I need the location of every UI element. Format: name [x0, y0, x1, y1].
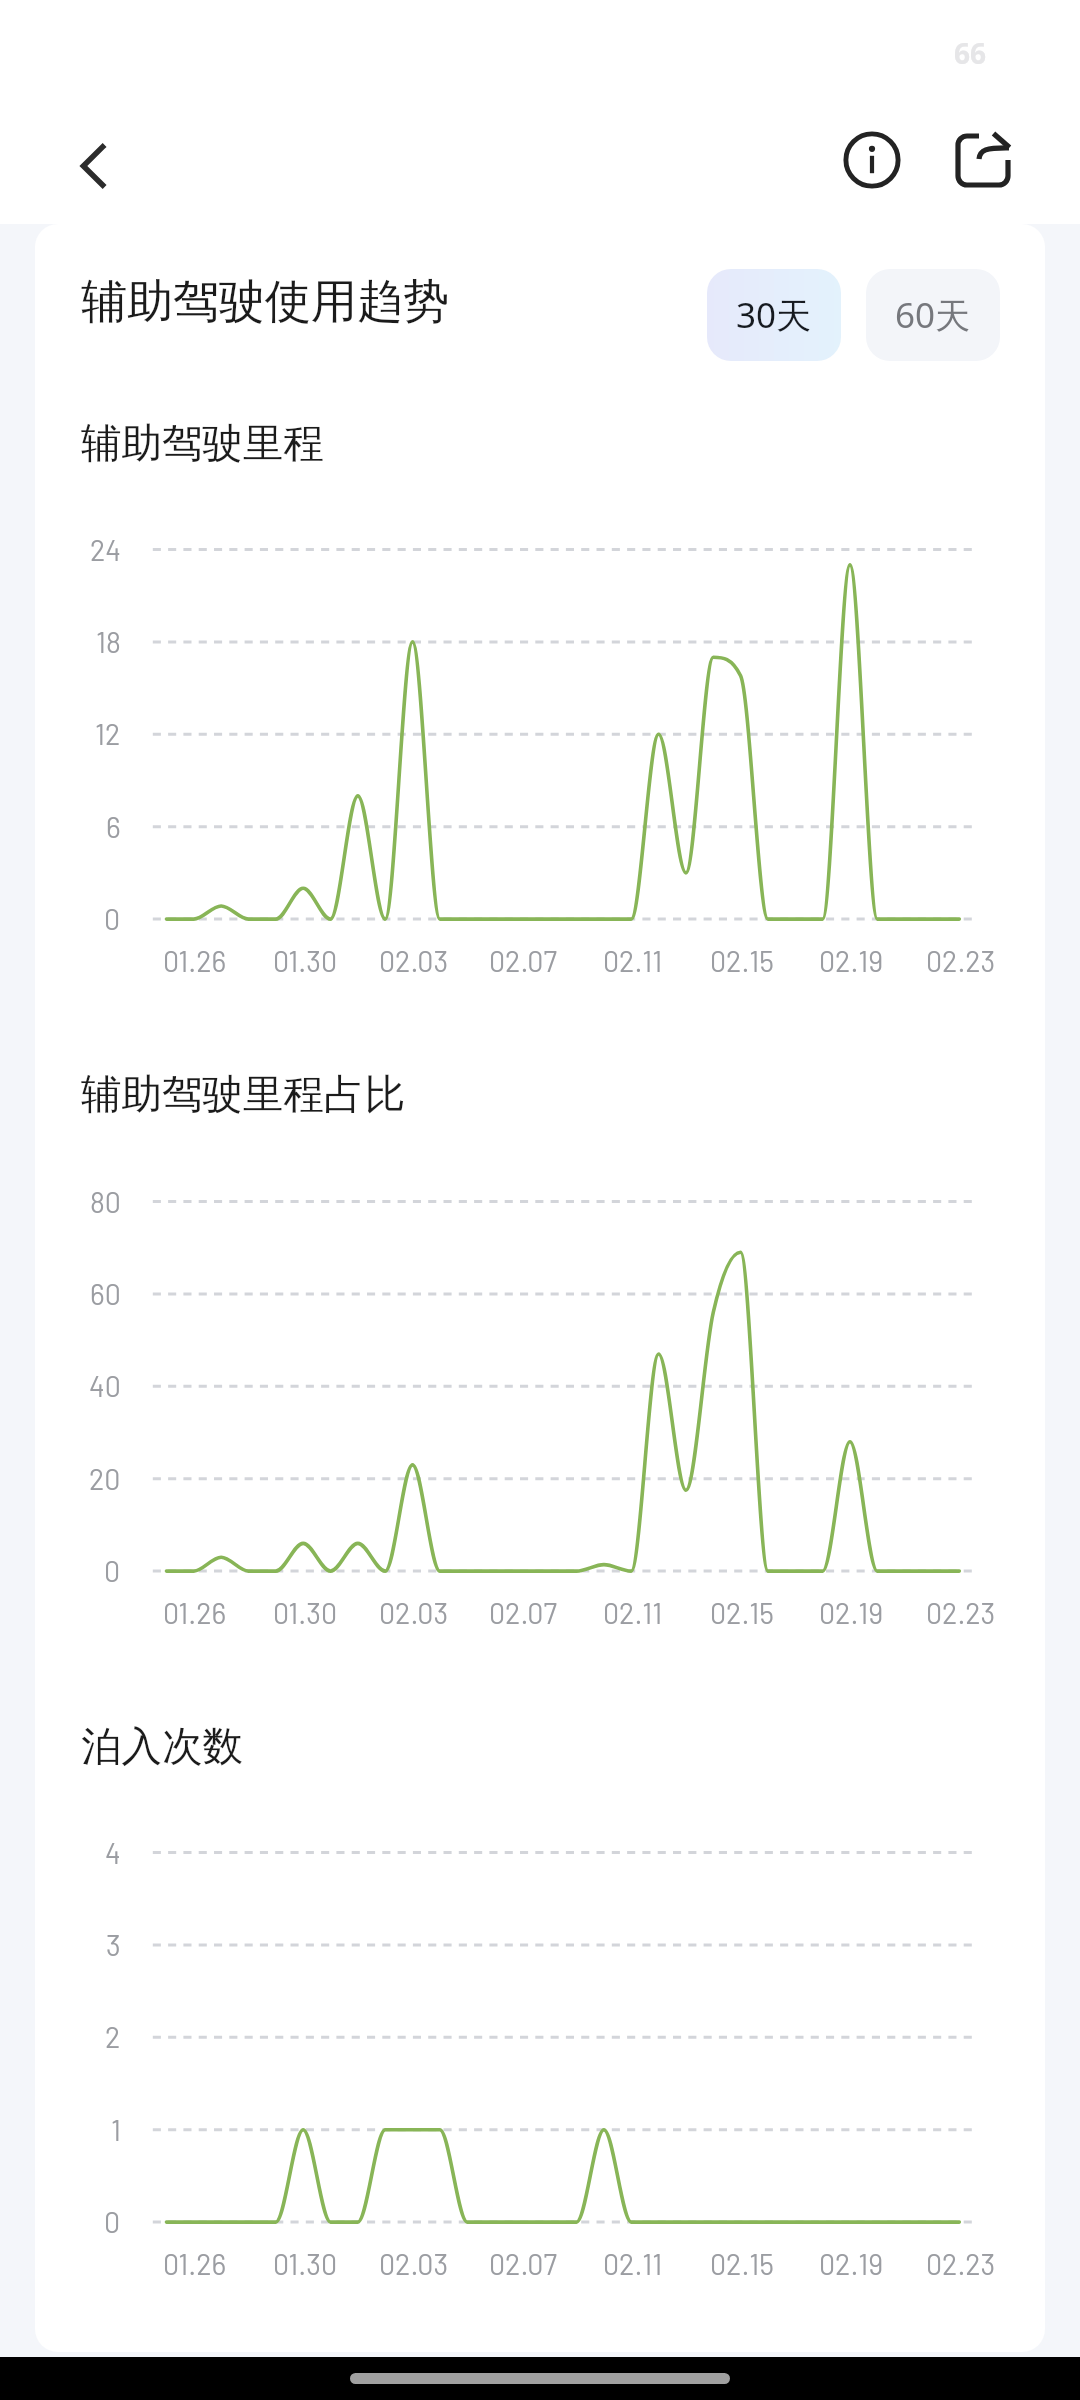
- staticText: 02.23: [926, 2246, 996, 2280]
- staticText: 01.26: [163, 2246, 227, 2280]
- staticText: 02.11: [603, 1595, 663, 1629]
- staticText: 02.03: [379, 1595, 449, 1629]
- button[interactable]: Info: [822, 110, 922, 210]
- staticText: 02.15: [710, 1595, 774, 1629]
- button[interactable]: 60天: [866, 269, 1000, 361]
- staticText: 辅助驾驶里程占比: [81, 1069, 405, 1120]
- staticText: 60: [90, 1276, 121, 1310]
- staticText: 辅助驾驶使用趋势: [81, 273, 449, 331]
- staticText: 02.03: [379, 2246, 449, 2280]
- staticText: 18: [96, 624, 121, 658]
- staticText: 02.07: [489, 943, 557, 977]
- staticText: 40: [89, 1368, 121, 1402]
- staticText: 0: [104, 901, 121, 935]
- staticText: 60天: [895, 291, 971, 339]
- button[interactable]: Back: [45, 118, 141, 214]
- staticText: 02.19: [819, 943, 884, 977]
- staticText: 0: [104, 2204, 121, 2238]
- staticText: 30天: [736, 291, 812, 339]
- staticText: 0: [104, 1553, 121, 1587]
- staticText: 2: [105, 2019, 121, 2053]
- staticText: 01.30: [273, 2246, 337, 2280]
- staticText: 20: [89, 1461, 121, 1495]
- staticText: 02.15: [710, 943, 774, 977]
- staticText: 泊入次数: [81, 1721, 243, 1772]
- staticText: 01.26: [163, 1595, 227, 1629]
- button[interactable]: Share: [931, 107, 1035, 211]
- staticText: 80: [90, 1184, 121, 1218]
- staticText: 02.07: [489, 2246, 557, 2280]
- staticText: 6: [106, 809, 121, 843]
- staticText: 3: [106, 1927, 121, 1961]
- staticText: 02.15: [710, 2246, 774, 2280]
- button[interactable]: 30天: [707, 269, 841, 361]
- staticText: 01.30: [273, 1595, 337, 1629]
- staticText: 66: [954, 34, 987, 72]
- staticText: 02.11: [603, 943, 663, 977]
- staticText: 12: [95, 716, 121, 750]
- staticText: 02.03: [379, 943, 449, 977]
- staticText: 4: [105, 1835, 121, 1869]
- staticText: 辅助驾驶里程: [81, 418, 324, 469]
- staticText: 01.26: [163, 943, 227, 977]
- staticText: 02.23: [926, 1595, 996, 1629]
- staticText: 02.11: [603, 2246, 663, 2280]
- staticText: 02.07: [489, 1595, 557, 1629]
- staticText: 02.23: [926, 943, 996, 977]
- staticText: 24: [90, 532, 121, 566]
- staticText: 01.30: [273, 943, 337, 977]
- staticText: 02.19: [819, 2246, 884, 2280]
- staticText: 1: [111, 2112, 121, 2146]
- staticText: 02.19: [819, 1595, 884, 1629]
